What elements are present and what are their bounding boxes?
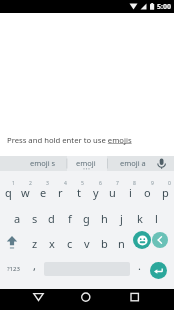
staticText: s <box>32 211 38 226</box>
staticText: a <box>14 211 21 226</box>
staticText: g <box>83 211 90 226</box>
button[interactable]: v <box>78 230 95 257</box>
button[interactable] <box>58 289 116 310</box>
staticText: p <box>162 185 169 200</box>
staticText: x <box>49 236 55 251</box>
button[interactable]: . <box>131 252 148 279</box>
staticText: 9 <box>151 180 154 187</box>
staticText: 1 <box>12 180 15 187</box>
staticText: v <box>84 236 90 251</box>
staticText: 0 <box>168 180 171 187</box>
staticText: t <box>77 185 81 200</box>
button[interactable]: j <box>113 205 130 232</box>
staticText: 6 <box>99 180 102 187</box>
staticText: ?123 <box>7 265 20 273</box>
button[interactable] <box>0 289 58 310</box>
staticText: o <box>144 185 151 200</box>
button[interactable]: f <box>61 205 78 232</box>
button[interactable]: emoji <box>61 156 111 170</box>
staticText: c <box>67 236 73 251</box>
button[interactable]: , <box>26 252 43 279</box>
button[interactable]: r <box>52 179 69 206</box>
staticText: f <box>68 211 72 226</box>
button[interactable]: g <box>78 205 95 232</box>
button[interactable]: s <box>26 205 43 232</box>
button[interactable]: u <box>104 179 121 206</box>
staticText: 8 <box>133 180 136 187</box>
staticText: emoji <box>76 158 96 168</box>
staticText: 2 <box>29 180 32 187</box>
button[interactable]: d <box>43 205 60 232</box>
staticText: 7 <box>116 180 119 187</box>
button[interactable]: emoji a <box>108 156 158 170</box>
staticText: l <box>155 211 158 226</box>
staticText: e <box>40 185 47 200</box>
staticText: k <box>137 211 143 226</box>
button[interactable] <box>116 289 174 310</box>
staticText: i <box>129 185 132 200</box>
button[interactable]: y <box>87 179 104 206</box>
button[interactable]: q <box>0 179 17 206</box>
staticText: emoji s <box>30 158 56 168</box>
button[interactable]: emoji s <box>18 156 68 170</box>
staticText: q <box>5 185 12 200</box>
staticText: r <box>58 185 63 200</box>
button[interactable]: e <box>35 179 52 206</box>
staticText: j <box>120 211 123 226</box>
staticText: , <box>33 258 36 273</box>
staticText: d <box>48 211 55 226</box>
button[interactable]: h <box>96 205 113 232</box>
button[interactable]: l <box>148 205 165 232</box>
button[interactable]: w <box>17 179 34 206</box>
button[interactable]: ?123 <box>0 254 26 284</box>
button[interactable]: t <box>70 179 87 206</box>
button[interactable]: k <box>131 205 148 232</box>
button[interactable]: x <box>43 230 60 257</box>
button[interactable]: o <box>139 179 156 206</box>
staticText: z <box>32 236 38 251</box>
button[interactable] <box>150 262 167 279</box>
staticText: . <box>138 258 141 273</box>
button[interactable]: Press and hold enter to use emojis <box>7 135 132 145</box>
staticText: 5:00 <box>157 2 171 12</box>
button[interactable]: n <box>113 230 130 257</box>
button[interactable] <box>0 229 26 256</box>
button[interactable]: z <box>26 230 43 257</box>
staticText: n <box>118 236 125 251</box>
button[interactable]: b <box>96 230 113 257</box>
button[interactable] <box>152 232 168 248</box>
staticText: 3 <box>46 180 49 187</box>
button[interactable]: c <box>61 230 78 257</box>
staticText: emoji a <box>120 158 146 168</box>
staticText: 5 <box>81 180 84 187</box>
staticText: y <box>93 185 99 200</box>
staticText: h <box>101 211 108 226</box>
staticText: w <box>21 185 30 200</box>
staticText: 4 <box>64 180 67 187</box>
button[interactable] <box>133 231 151 249</box>
staticText: u <box>109 185 116 200</box>
staticText: b <box>101 236 108 251</box>
button[interactable]: p <box>157 179 174 206</box>
button[interactable]: a <box>9 205 26 232</box>
button[interactable]: i <box>122 179 139 206</box>
